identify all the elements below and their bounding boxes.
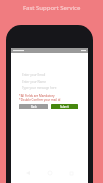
staticText: Fast Support Service [23,4,81,12]
button[interactable]: Enter your Email [22,73,46,77]
staticText: Submit [60,105,69,109]
button[interactable]: Submit [51,104,78,109]
button[interactable]: Type your message here [22,86,57,90]
staticText: Enter your Email [22,73,46,77]
staticText: *All Fields are Mandatory [19,94,55,98]
button[interactable]: Back [24,169,32,177]
staticText: Type your message here [22,86,57,90]
staticText: *Double Confirm your mail id [19,98,61,102]
button[interactable]: Enter your Name [22,80,46,84]
staticText: Back [31,105,37,109]
staticText: Enter your Name [22,80,46,84]
button[interactable]: Back [19,104,48,109]
button[interactable]: Fast Support Service [0,0,103,15]
